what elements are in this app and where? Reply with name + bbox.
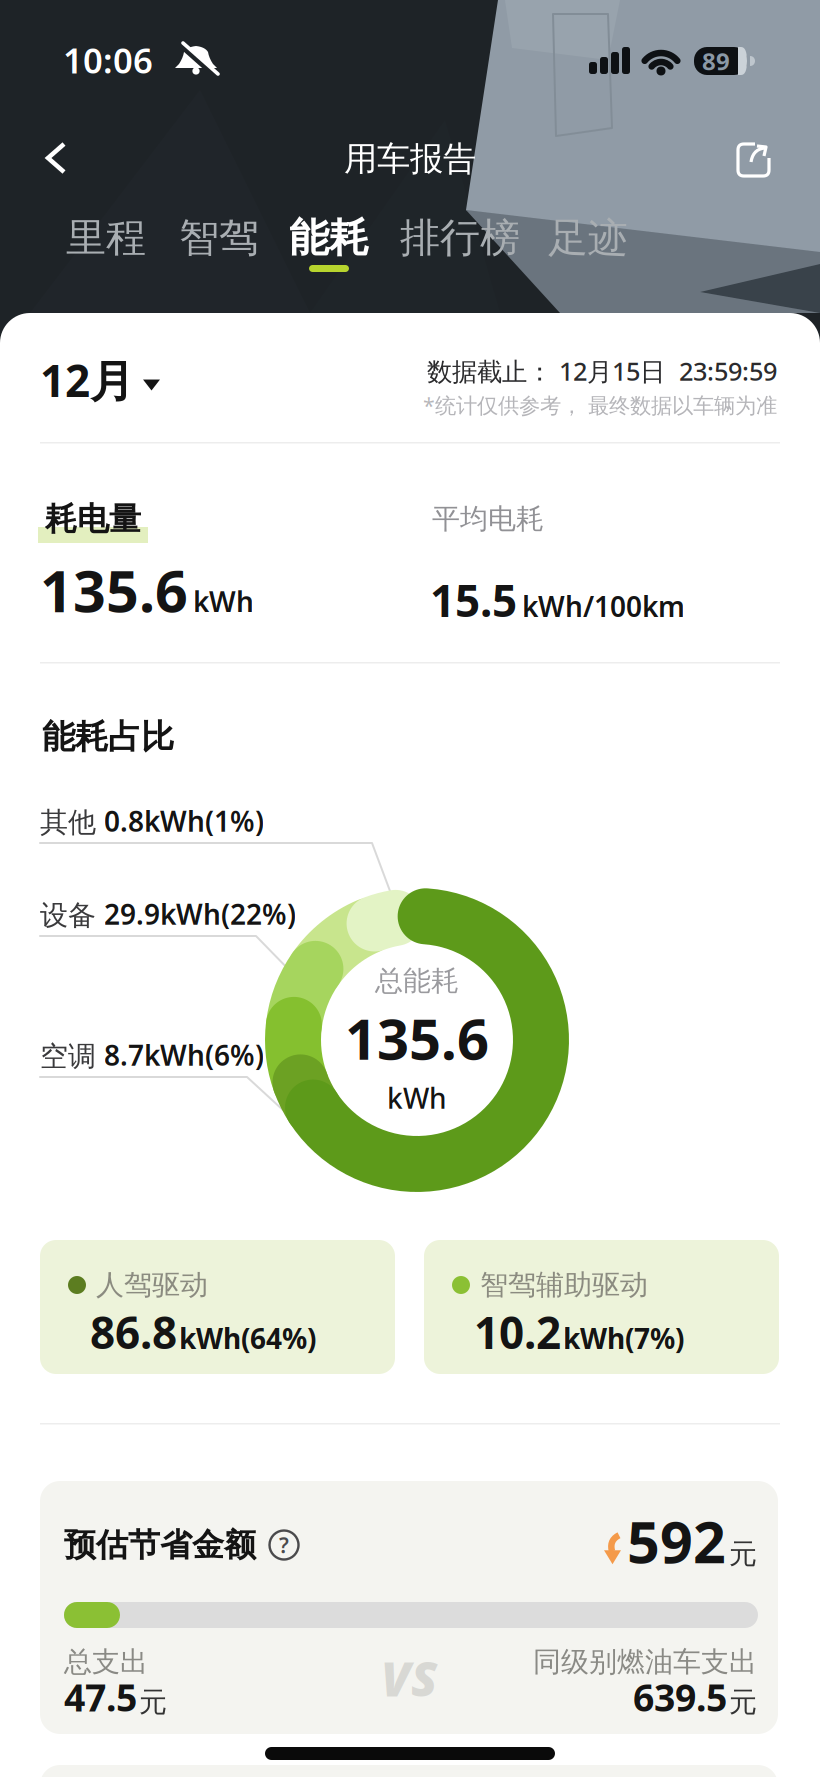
staticText: 用车报告 bbox=[344, 138, 476, 179]
staticText: 元 bbox=[729, 1537, 757, 1571]
staticText: 同级别燃油车支出 bbox=[533, 1645, 757, 1679]
button[interactable]: 智驾 bbox=[174, 208, 264, 268]
staticText: 10:06 bbox=[63, 37, 153, 83]
staticText: 47.5 bbox=[64, 1672, 137, 1722]
staticText: 12月 bbox=[40, 351, 134, 409]
staticText: 耗电量 bbox=[45, 499, 141, 539]
staticText: 86.8 bbox=[90, 1303, 177, 1361]
staticText: 排行榜 bbox=[400, 213, 520, 262]
button[interactable]: 足迹 bbox=[543, 208, 633, 268]
staticText: 数据截止： 12月15日 23:59:59 bbox=[427, 354, 777, 388]
staticText: *统计仅供参考， 最终数据以车辆为准 bbox=[423, 391, 777, 419]
staticText: 能耗 bbox=[289, 213, 369, 262]
staticText: 10.2 bbox=[474, 1303, 561, 1361]
staticText: 智驾辅助驱动 bbox=[480, 1268, 648, 1302]
button[interactable]: 12月 bbox=[40, 350, 160, 410]
staticText: 设备 bbox=[40, 898, 96, 933]
button[interactable] bbox=[30, 128, 90, 188]
staticText: 15.5 bbox=[430, 571, 517, 629]
staticText: 元 bbox=[729, 1685, 757, 1719]
staticText: 89 bbox=[702, 45, 730, 77]
staticText: 639.5 bbox=[633, 1672, 727, 1722]
staticText: 8.7kWh(6%) bbox=[104, 1036, 264, 1073]
staticText: kWh(7%) bbox=[563, 1320, 684, 1357]
staticText: kWh(64%) bbox=[179, 1320, 316, 1357]
button[interactable]: 智驾辅助驱动 bbox=[424, 1240, 779, 1374]
staticText: 人驾驱动 bbox=[96, 1268, 208, 1302]
staticText: kWh/100km bbox=[522, 588, 685, 625]
staticText: 元 bbox=[139, 1685, 167, 1719]
staticText: 足迹 bbox=[548, 213, 628, 262]
staticText: 135.6 bbox=[345, 1001, 489, 1075]
staticText: 能耗占比 bbox=[42, 716, 174, 757]
staticText: 其他 bbox=[40, 805, 96, 840]
button[interactable]: 人驾驱动 bbox=[40, 1240, 395, 1374]
staticText: 0.8kWh(1%) bbox=[104, 802, 264, 839]
staticText: 平均电耗 bbox=[432, 502, 544, 536]
staticText: 里程 bbox=[66, 213, 146, 262]
staticText: 592 bbox=[627, 1503, 726, 1579]
staticText: VS bbox=[381, 1646, 437, 1710]
staticText: ? bbox=[279, 1531, 289, 1559]
staticText: 预估节省金额 bbox=[64, 1525, 256, 1565]
staticText: 智驾 bbox=[179, 213, 259, 262]
button[interactable] bbox=[726, 131, 782, 187]
staticText: 总能耗 bbox=[375, 964, 459, 998]
button[interactable]: ? bbox=[268, 1529, 300, 1561]
button[interactable]: 能耗 bbox=[284, 208, 374, 274]
button[interactable]: 里程 bbox=[61, 208, 151, 268]
staticText: 29.9kWh(22%) bbox=[104, 895, 296, 932]
staticText: 总支出 bbox=[64, 1645, 148, 1679]
staticText: kWh bbox=[387, 1079, 447, 1117]
staticText: 135.6 bbox=[40, 552, 188, 628]
button[interactable]: 排行榜 bbox=[394, 208, 526, 268]
staticText: 空调 bbox=[40, 1039, 96, 1074]
staticText: kWh bbox=[193, 583, 254, 620]
